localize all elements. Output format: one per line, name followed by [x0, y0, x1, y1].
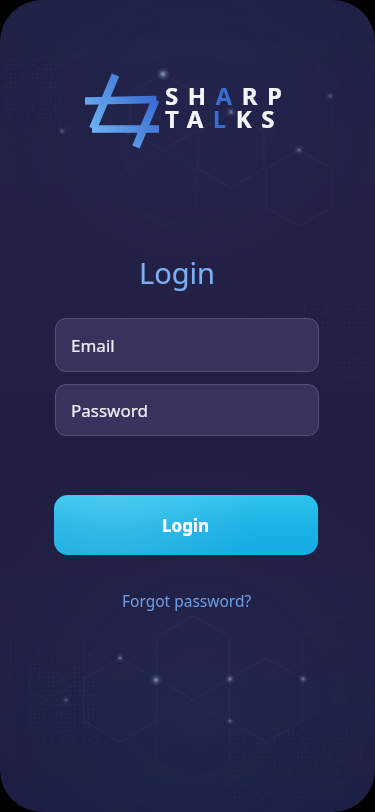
staticText: SHARP [165, 79, 292, 112]
button[interactable]: Email [55, 318, 319, 372]
button[interactable]: Login [54, 495, 318, 555]
button[interactable]: Forgot password? [122, 590, 252, 611]
staticText: TALKS [165, 102, 284, 135]
staticText: Email [71, 334, 115, 357]
staticText: Login [162, 514, 210, 537]
button[interactable]: Password [55, 384, 319, 436]
staticText: Password [71, 399, 148, 422]
staticText: Login [139, 253, 215, 292]
